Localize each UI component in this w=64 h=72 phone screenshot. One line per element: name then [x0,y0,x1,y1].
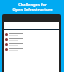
button[interactable] [4,37,59,42]
staticText: Challenges for Open Infrastructure [12,2,53,12]
button[interactable] [4,47,59,52]
button[interactable] [4,42,59,47]
button[interactable] [4,32,59,37]
